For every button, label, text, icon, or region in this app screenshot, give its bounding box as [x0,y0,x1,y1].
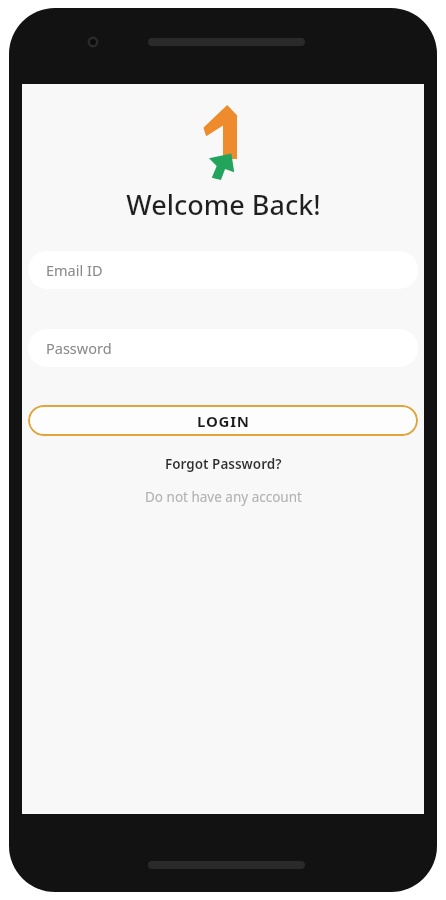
button[interactable]: LOGIN [28,405,418,436]
staticText: Password [46,338,112,358]
staticText: LOGIN [197,411,250,431]
button[interactable]: Password [28,329,418,367]
staticText: Welcome Back! [126,186,321,223]
staticText: Do not have any account [145,488,302,506]
staticText: Email ID [46,260,103,280]
button[interactable]: Do not have any account [137,485,310,509]
staticText: Forgot Password? [165,455,282,473]
button[interactable]: Forgot Password? [157,452,290,476]
button[interactable]: Email ID [28,251,418,289]
